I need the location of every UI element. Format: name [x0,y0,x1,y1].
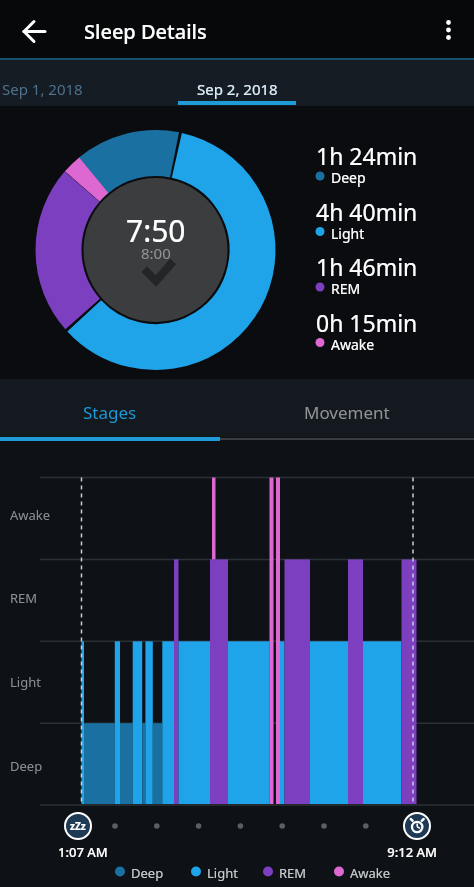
staticText: Deep [131,864,164,882]
button[interactable] [220,379,474,441]
staticText: Light [207,864,238,882]
staticText: Movement [304,401,390,424]
staticText: 1h 46min [316,251,418,282]
staticText: 0h 15min [316,307,418,338]
staticText: 1h 24min [316,140,418,171]
staticText: 8:00 [141,243,171,263]
staticText: 9:12 AM [337,843,437,861]
button[interactable] [0,60,118,106]
button[interactable] [428,10,468,50]
staticText: 1:07 AM [58,843,108,861]
staticText: REM [279,864,307,882]
button[interactable] [14,12,54,52]
staticText: Light [331,224,365,243]
button[interactable] [0,379,220,441]
staticText: Stages [83,401,137,424]
staticText: Light [10,673,41,691]
button[interactable] [178,60,296,106]
staticText: 4h 40min [316,196,418,227]
staticText: Sleep Details [84,18,207,45]
staticText: Awake [350,864,391,882]
staticText: REM [331,279,361,298]
staticText: 7:50 [126,210,186,251]
staticText: REM [10,589,38,607]
staticText: Sep 2, 2018 [197,79,278,99]
button[interactable] [62,810,94,842]
staticText: Awake [10,506,51,524]
staticText: zZz [70,819,86,833]
button[interactable] [401,810,433,842]
staticText: Deep [331,168,366,187]
staticText: Awake [331,335,375,354]
staticText: Deep [10,757,43,775]
staticText: Sep 1, 2018 [2,79,83,99]
